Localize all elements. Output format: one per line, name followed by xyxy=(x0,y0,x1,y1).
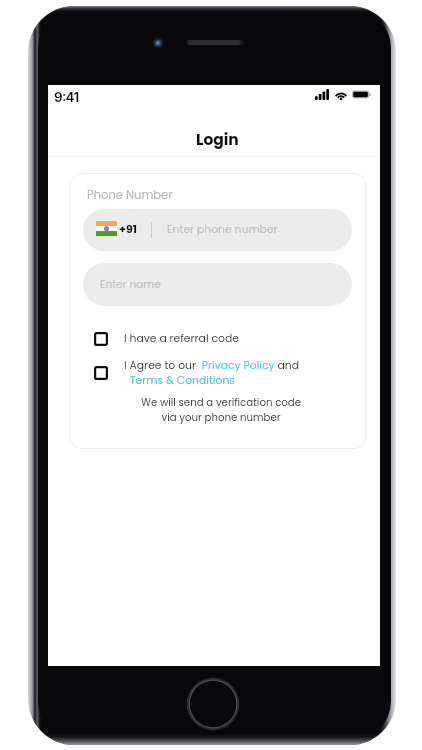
staticText: +91 xyxy=(119,221,137,236)
staticText: Enter phone number xyxy=(167,222,278,237)
staticText: Enter name xyxy=(100,277,161,292)
staticText: 9:41 xyxy=(54,89,79,105)
staticText: We will send a verification code via you… xyxy=(73,395,366,425)
button[interactable]: Enter name xyxy=(83,263,352,306)
button[interactable]: +91 xyxy=(83,209,352,251)
staticText: I Agree to our Privacy Policy and Terms … xyxy=(124,358,300,388)
staticText: Phone Number xyxy=(87,187,173,203)
staticText: Login xyxy=(196,129,239,151)
button[interactable]: I have a referral code xyxy=(88,326,288,351)
button[interactable]: I Agree to our Privacy Policy and Terms … xyxy=(88,357,308,389)
staticText: I have a referral code xyxy=(124,331,239,346)
